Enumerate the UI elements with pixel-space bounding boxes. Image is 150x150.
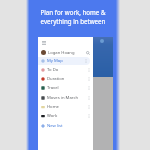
button[interactable]: Home xyxy=(38,103,93,111)
other: More options xyxy=(87,68,91,72)
button[interactable]: To Do xyxy=(38,66,93,74)
button[interactable]: Moves in March xyxy=(38,94,93,102)
staticText: Logan Hoang xyxy=(48,50,75,56)
button[interactable]: Duration xyxy=(38,75,93,83)
button[interactable]: My Map xyxy=(38,57,90,65)
staticText: Home xyxy=(47,104,59,110)
other: More options xyxy=(84,59,88,63)
staticText: My Map xyxy=(47,58,63,64)
staticText: Work xyxy=(47,113,58,119)
staticText: Moves in March xyxy=(47,95,78,101)
other: More options xyxy=(87,114,91,118)
staticText: Plan for work, home & everything in betw… xyxy=(27,8,119,26)
other: Search xyxy=(86,51,90,55)
button[interactable]: Menu xyxy=(42,41,46,45)
staticText: Travel xyxy=(47,85,59,91)
staticText: Duration xyxy=(47,76,65,82)
button[interactable]: Work xyxy=(38,112,93,120)
other: More options xyxy=(87,96,91,100)
button[interactable]: Logan Hoang xyxy=(38,49,93,56)
other: More options xyxy=(87,77,91,81)
staticText: New list xyxy=(47,123,63,129)
button[interactable]: New list xyxy=(38,122,93,130)
other: More options xyxy=(87,86,91,90)
button[interactable]: Travel xyxy=(38,84,93,92)
staticText: To Do xyxy=(47,67,59,73)
other: More options xyxy=(87,105,91,109)
